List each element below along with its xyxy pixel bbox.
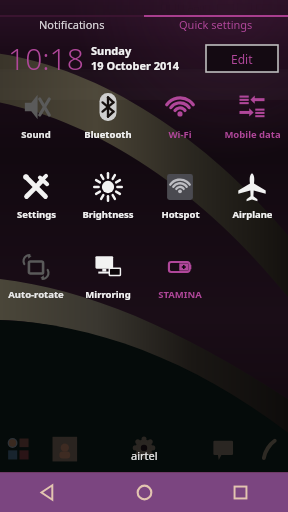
button[interactable]: Mobile data xyxy=(216,86,288,140)
staticText: Sunday xyxy=(91,43,132,58)
button[interactable]: Home xyxy=(96,473,192,512)
button[interactable]: STAMINA xyxy=(144,246,216,300)
staticText: Mobile data xyxy=(224,128,281,140)
button[interactable]: Wi-Fi xyxy=(144,86,216,140)
button[interactable]: Hotspot xyxy=(144,166,216,220)
button[interactable]: Settings xyxy=(0,166,72,220)
staticText: Wi-Fi xyxy=(168,128,192,140)
button[interactable]: Quick settings xyxy=(144,15,288,34)
staticText: Auto-rotate xyxy=(8,288,64,300)
staticText: Bluetooth xyxy=(84,128,132,140)
staticText: Hotspot xyxy=(161,208,200,220)
staticText: Quick settings xyxy=(179,17,253,32)
staticText: airtel xyxy=(131,448,158,463)
button[interactable]: Brightness xyxy=(72,166,144,220)
button[interactable]: Edit xyxy=(206,45,278,72)
staticText: Airplane xyxy=(232,208,273,220)
staticText: Brightness xyxy=(82,208,134,220)
button[interactable]: Sound xyxy=(0,86,72,140)
button[interactable]: Recent apps xyxy=(192,473,288,512)
staticText: Sound xyxy=(21,128,51,140)
staticText: STAMINA xyxy=(158,288,202,300)
staticText: Notifications xyxy=(39,17,105,32)
staticText: 10:18 xyxy=(8,38,84,79)
button[interactable]: Back xyxy=(0,473,96,512)
staticText: 19 October 2014 xyxy=(91,58,179,73)
button[interactable]: Notifications xyxy=(0,15,144,34)
button[interactable]: Bluetooth xyxy=(72,86,144,140)
button[interactable]: Auto-rotate xyxy=(0,246,72,300)
staticText: Settings xyxy=(17,208,56,220)
staticText: Mirroring xyxy=(85,288,131,300)
button[interactable]: Airplane xyxy=(216,166,288,220)
staticText: Edit xyxy=(231,51,253,67)
button[interactable]: Mirroring xyxy=(72,246,144,300)
